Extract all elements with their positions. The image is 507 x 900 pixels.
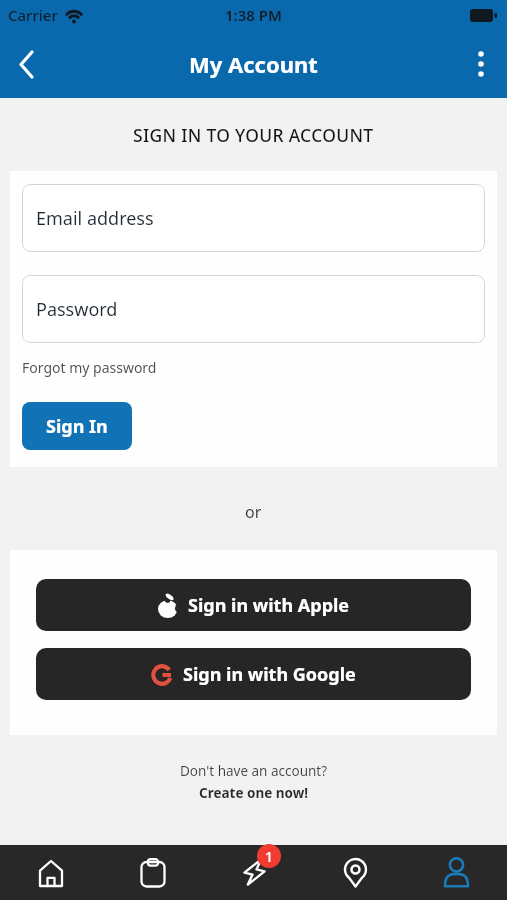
button[interactable]: 1 — [204, 845, 305, 900]
button[interactable] — [8, 42, 44, 86]
staticText: or — [245, 501, 262, 523]
staticText: Don't have an account? — [180, 762, 328, 780]
button[interactable]: Password — [22, 275, 485, 343]
button[interactable] — [305, 845, 406, 900]
staticText: 1:38 PM — [225, 5, 282, 25]
button[interactable] — [102, 845, 204, 900]
staticText: Sign in with Apple — [188, 593, 350, 618]
button[interactable] — [406, 845, 507, 900]
staticText: Email address — [36, 206, 154, 231]
button[interactable]: Email address — [22, 184, 485, 252]
button[interactable]: Sign in with Apple — [36, 579, 471, 631]
button[interactable]: Create one now! — [199, 784, 309, 802]
staticText: SIGN IN TO YOUR ACCOUNT — [133, 123, 374, 147]
staticText: Password — [36, 297, 118, 322]
staticText: Sign In — [46, 414, 108, 439]
button[interactable] — [463, 42, 499, 86]
staticText: 1 — [265, 847, 274, 866]
button[interactable]: Sign In — [22, 402, 132, 450]
staticText: Carrier — [8, 5, 58, 25]
staticText: Sign in with Google — [183, 662, 356, 687]
button[interactable]: Forgot my password — [22, 358, 157, 377]
staticText: My Account — [189, 49, 318, 79]
button[interactable]: Sign in with Google — [36, 648, 471, 700]
button[interactable] — [0, 845, 102, 900]
